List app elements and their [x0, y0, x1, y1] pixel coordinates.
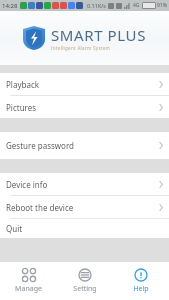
- staticText: Playback: [6, 79, 39, 90]
- staticText: Pictures: [6, 102, 37, 113]
- staticText: SMART PLUS: [51, 25, 146, 45]
- button[interactable]: Pictures: [0, 96, 169, 118]
- button[interactable]: Gesture password: [0, 132, 169, 159]
- staticText: 4G: [133, 2, 140, 9]
- button[interactable]: Quit: [0, 219, 169, 238]
- button[interactable]: Device info: [0, 173, 169, 195]
- staticText: 0.11K/s: [87, 2, 106, 9]
- button[interactable]: Manage: [0, 262, 57, 300]
- staticText: Quit: [6, 223, 23, 234]
- staticText: Manage: [15, 284, 42, 294]
- staticText: Device info: [6, 179, 48, 190]
- staticText: Intelligent Alarm System: [51, 45, 111, 51]
- button[interactable]: Setting: [57, 262, 113, 300]
- button[interactable]: Reboot the device: [0, 196, 169, 218]
- staticText: Help: [133, 284, 149, 294]
- staticText: Gesture password: [6, 140, 74, 151]
- button[interactable]: Playback: [0, 73, 169, 95]
- staticText: 14:28: [2, 2, 18, 10]
- staticText: Setting: [73, 284, 97, 294]
- button[interactable]: Help: [113, 262, 169, 300]
- staticText: 91%: [157, 2, 167, 9]
- staticText: Reboot the device: [6, 202, 74, 213]
